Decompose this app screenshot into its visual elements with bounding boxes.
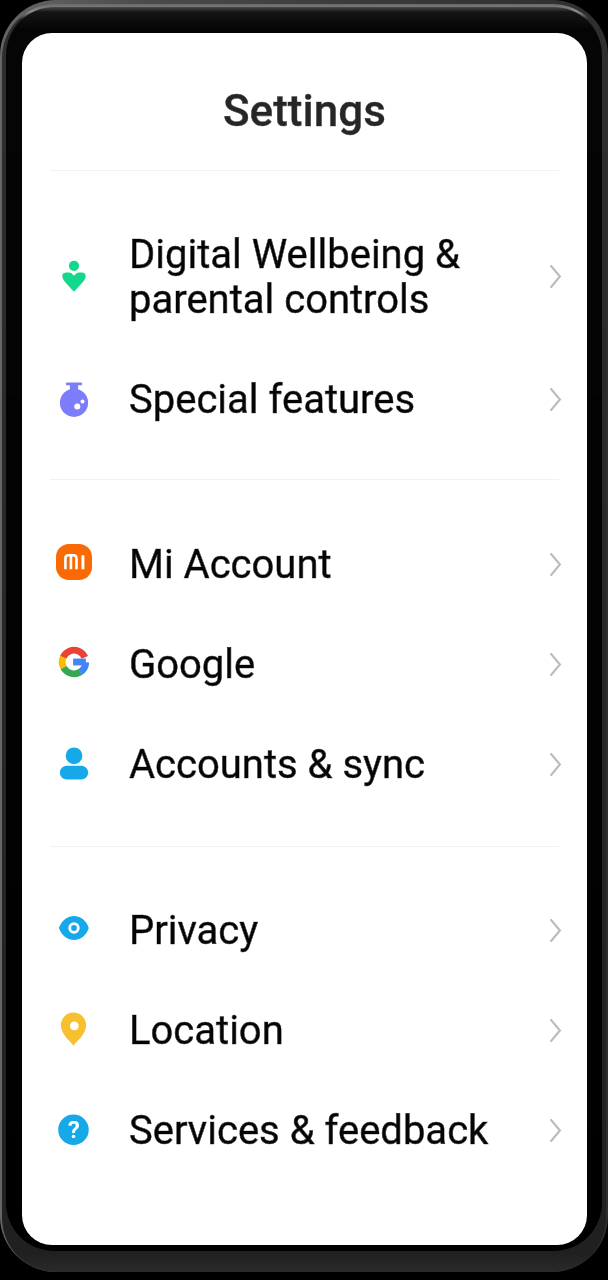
other: Accounts and sync: [56, 746, 92, 782]
button[interactable]: Services and feedback: [22, 1080, 587, 1180]
staticText: Digital Wellbeing & parental controls: [129, 231, 460, 322]
staticText: Privacy: [129, 907, 259, 954]
button[interactable]: Mi Account: [22, 514, 587, 614]
staticText: Privacy: [129, 907, 259, 954]
other: Privacy: [56, 910, 92, 946]
staticText: Mi Account: [129, 541, 332, 588]
staticText: Location: [129, 1007, 284, 1054]
button[interactable]: Location: [22, 980, 587, 1080]
other: Special features: [56, 381, 92, 417]
button[interactable]: Privacy: [22, 880, 587, 980]
other: Digital Wellbeing: [56, 259, 92, 295]
staticText: Accounts & sync: [129, 741, 425, 788]
staticText: Google: [129, 641, 256, 688]
other: Location: [56, 1011, 92, 1047]
staticText: Settings: [223, 85, 386, 137]
staticText: Special features: [129, 376, 416, 423]
staticText: Special features: [129, 376, 416, 423]
staticText: Mi Account: [129, 541, 332, 588]
staticText: Google: [129, 641, 256, 688]
staticText: ?: [68, 1116, 80, 1144]
button[interactable]: Digital Wellbeing: [22, 204, 587, 349]
button[interactable]: Accounts and sync: [22, 714, 587, 814]
staticText: Services & feedback: [129, 1107, 489, 1154]
staticText: Services & feedback: [129, 1107, 489, 1154]
button[interactable]: Special features: [22, 349, 587, 449]
staticText: Digital Wellbeing & parental controls: [129, 231, 460, 322]
staticText: Location: [129, 1007, 284, 1054]
other: Services and feedback: [56, 1112, 92, 1148]
staticText: Accounts & sync: [129, 741, 425, 788]
other: Mi Account: [56, 544, 92, 580]
button[interactable]: Google: [22, 614, 587, 714]
other: Google: [56, 644, 92, 680]
staticText: Settings: [223, 85, 386, 137]
